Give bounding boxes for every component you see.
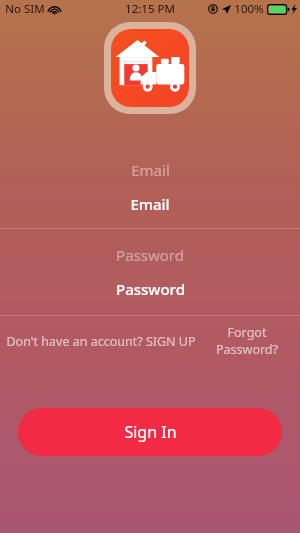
staticText: Don't have an account? SIGN UP [6, 333, 196, 350]
button[interactable]: Don't have an account? SIGN UP [4, 329, 198, 354]
other: App logo [111, 29, 189, 107]
button[interactable]: Password [0, 245, 300, 313]
button[interactable]: Forgot Password? [198, 320, 296, 362]
staticText: Email [131, 160, 170, 180]
staticText: Password [116, 279, 185, 299]
button[interactable]: Sign In [18, 408, 282, 456]
staticText: Password [116, 245, 184, 265]
staticText: Forgot Password? [200, 324, 294, 358]
staticText: 12:15 PM [125, 1, 175, 17]
staticText: 100% [234, 1, 264, 17]
staticText: Email [130, 194, 170, 214]
staticText: No SIM [5, 1, 45, 17]
staticText: Sign In [124, 421, 177, 443]
button[interactable]: Email [0, 160, 300, 228]
